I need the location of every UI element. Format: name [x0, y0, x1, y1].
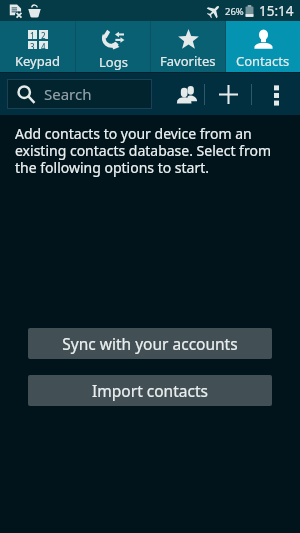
button[interactable]: Logs: [76, 21, 150, 72]
staticText: Add contacts to your device from an exis…: [15, 124, 290, 177]
staticText: 3: [30, 41, 35, 49]
staticText: Contacts: [236, 52, 290, 70]
button[interactable]: Import contacts: [28, 375, 272, 406]
button[interactable]: More options: [252, 73, 300, 115]
button[interactable]: Favorites: [151, 21, 225, 72]
staticText: Favorites: [160, 52, 216, 70]
staticText: 15:14: [259, 2, 294, 20]
staticText: Keypad: [15, 52, 61, 70]
button[interactable]: Search: [7, 79, 152, 109]
button[interactable]: Groups: [169, 73, 204, 115]
staticText: 2: [41, 30, 46, 39]
button[interactable]: 1: [0, 21, 75, 72]
staticText: Logs: [99, 53, 128, 71]
staticText: 1: [30, 30, 35, 39]
button[interactable]: Add contact: [205, 73, 251, 115]
staticText: 4: [41, 41, 46, 49]
staticText: 26%: [225, 5, 244, 18]
staticText: Sync with your accounts: [62, 333, 238, 354]
button[interactable]: Sync with your accounts: [28, 328, 272, 359]
staticText: Search: [44, 84, 92, 104]
button[interactable]: Contacts: [226, 21, 300, 72]
staticText: Import contacts: [92, 380, 208, 401]
